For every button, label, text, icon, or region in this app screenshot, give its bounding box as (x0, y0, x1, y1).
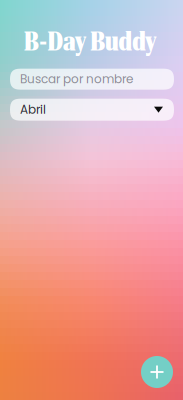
staticText: Buscar por nombre (20, 71, 133, 88)
button[interactable]: Add birthday (141, 356, 173, 388)
staticText: Abril (20, 101, 46, 118)
staticText: B-Day Buddy (24, 27, 157, 57)
button[interactable]: Abril (10, 99, 174, 121)
button[interactable]: Buscar por nombre (10, 69, 174, 90)
